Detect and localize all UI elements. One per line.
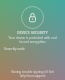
button[interactable]: Secure lock	[21, 6, 44, 29]
staticText: DEVICE SECURITY	[0, 31, 65, 35]
staticText: Having trouble signing in? Get	[0, 70, 65, 74]
staticText: help from support	[0, 74, 65, 78]
staticText: Your device is protected with end to end…	[7, 36, 58, 44]
staticText: Security code	[4, 46, 25, 50]
